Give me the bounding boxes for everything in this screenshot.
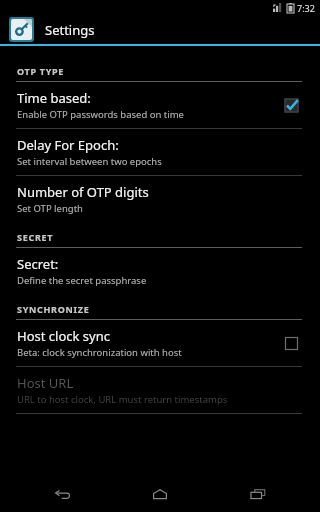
staticText: Time based: [17, 89, 91, 107]
staticText: Secret: [17, 255, 59, 273]
staticText: SYNCHRONIZE [17, 303, 90, 315]
button[interactable]: Settings [0, 15, 320, 44]
button[interactable]: Delay For Epoch: [0, 129, 320, 176]
button[interactable]: Time based: [0, 82, 320, 129]
button[interactable]: Recent apps [223, 475, 293, 512]
staticText: Set interval between two epochs [17, 155, 162, 168]
staticText: Define the secret passphrase [17, 274, 147, 287]
button: Host URL [0, 367, 320, 414]
staticText: Delay For Epoch: [17, 136, 119, 154]
staticText: Number of OTP digits [17, 183, 149, 201]
staticText: Beta: clock synchronization with host [17, 346, 182, 359]
staticText: Settings [45, 21, 95, 39]
staticText: SECRET [17, 231, 54, 243]
staticText: URL to host clock, URL must return times… [17, 393, 228, 406]
staticText: Host URL [17, 374, 74, 392]
staticText: 7:32 [297, 2, 315, 14]
staticText: OTP TYPE [17, 65, 65, 77]
button[interactable]: Number of OTP digits [0, 176, 320, 222]
staticText: Enable OTP passwords based on time [17, 108, 184, 121]
button[interactable]: Home [125, 475, 195, 512]
button[interactable]: Host clock sync [0, 320, 320, 367]
button[interactable]: Back [27, 475, 97, 512]
button[interactable]: Secret: [0, 248, 320, 294]
staticText: Set OTP length [17, 202, 83, 215]
staticText: Host clock sync [17, 327, 110, 345]
